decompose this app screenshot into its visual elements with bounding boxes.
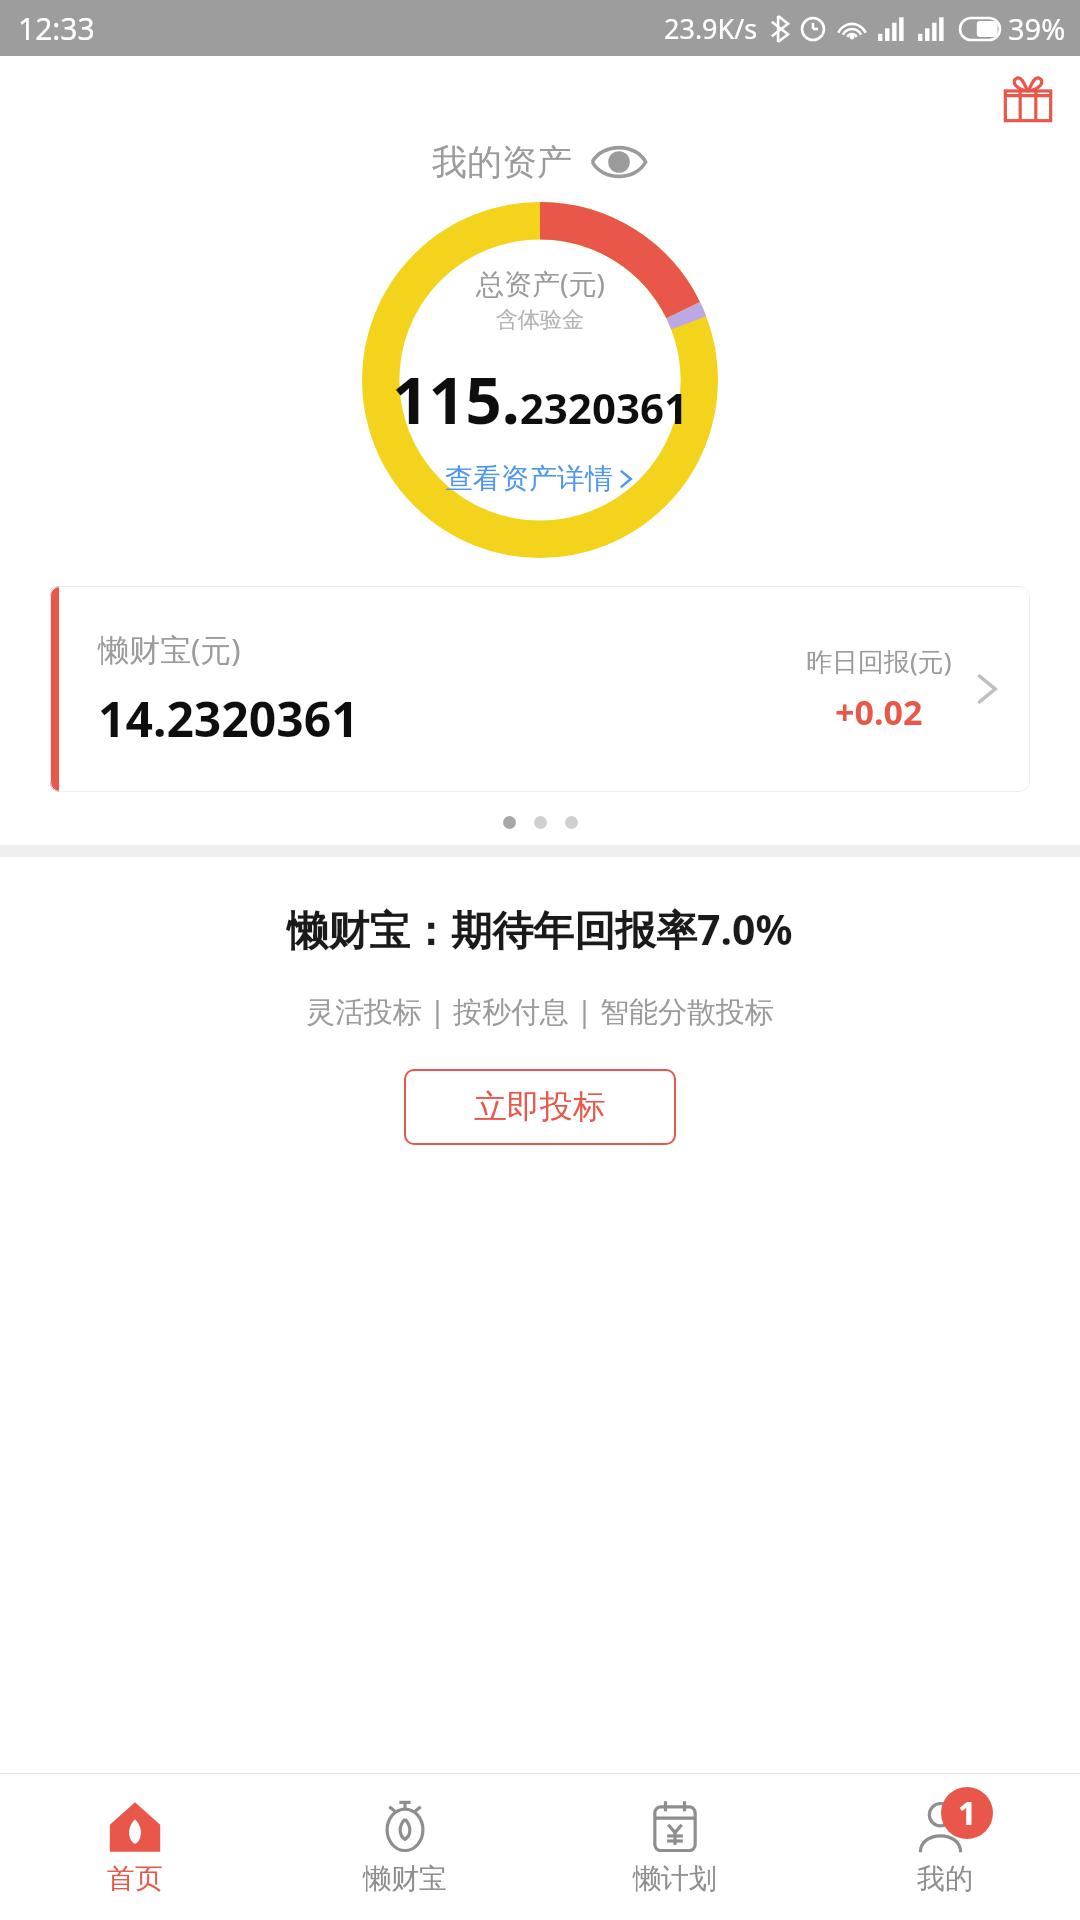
staticText: 懒财宝(元) — [98, 628, 241, 670]
staticText: 14.2320361 — [98, 686, 359, 751]
other: Toggle visibility — [590, 142, 648, 182]
staticText: 懒财宝 — [363, 1861, 447, 1896]
staticText: 昨日回报(元) — [806, 643, 952, 679]
staticText: 首页 — [107, 1861, 163, 1896]
staticText: +0.02 — [835, 689, 923, 735]
staticText: 23.9K/s — [664, 10, 758, 47]
staticText: 115.2320361 — [392, 356, 688, 443]
staticText: 懒财宝：期待年回报率7.0% — [287, 901, 793, 957]
button[interactable]: 查看资产详情 — [445, 461, 636, 496]
staticText: 懒计划 — [633, 1861, 717, 1896]
button[interactable]: 懒财宝(元) — [50, 586, 1030, 792]
button[interactable]: 我的资产 — [0, 140, 1080, 184]
staticText: 灵活投标 | 按秒付息 | 智能分散投标 — [306, 991, 775, 1031]
button[interactable]: 首页 — [0, 1774, 270, 1920]
staticText: 39% — [1008, 9, 1066, 48]
staticText: 查看资产详情 — [445, 461, 613, 496]
staticText: 含体验金 — [496, 306, 584, 334]
staticText: 我的资产 — [432, 140, 572, 184]
button[interactable]: 懒财宝 — [270, 1774, 540, 1920]
staticText: 我的 — [917, 1861, 973, 1896]
button[interactable]: 1 — [810, 1774, 1080, 1920]
button[interactable]: Gifts — [996, 66, 1060, 130]
button[interactable]: 懒计划 — [540, 1774, 810, 1920]
staticText: 总资产(元) — [476, 264, 605, 302]
staticText: 立即投标 — [474, 1086, 606, 1128]
button[interactable]: 立即投标 — [404, 1069, 676, 1145]
staticText: 12:33 — [18, 8, 95, 49]
staticText: 1 — [958, 1791, 977, 1835]
